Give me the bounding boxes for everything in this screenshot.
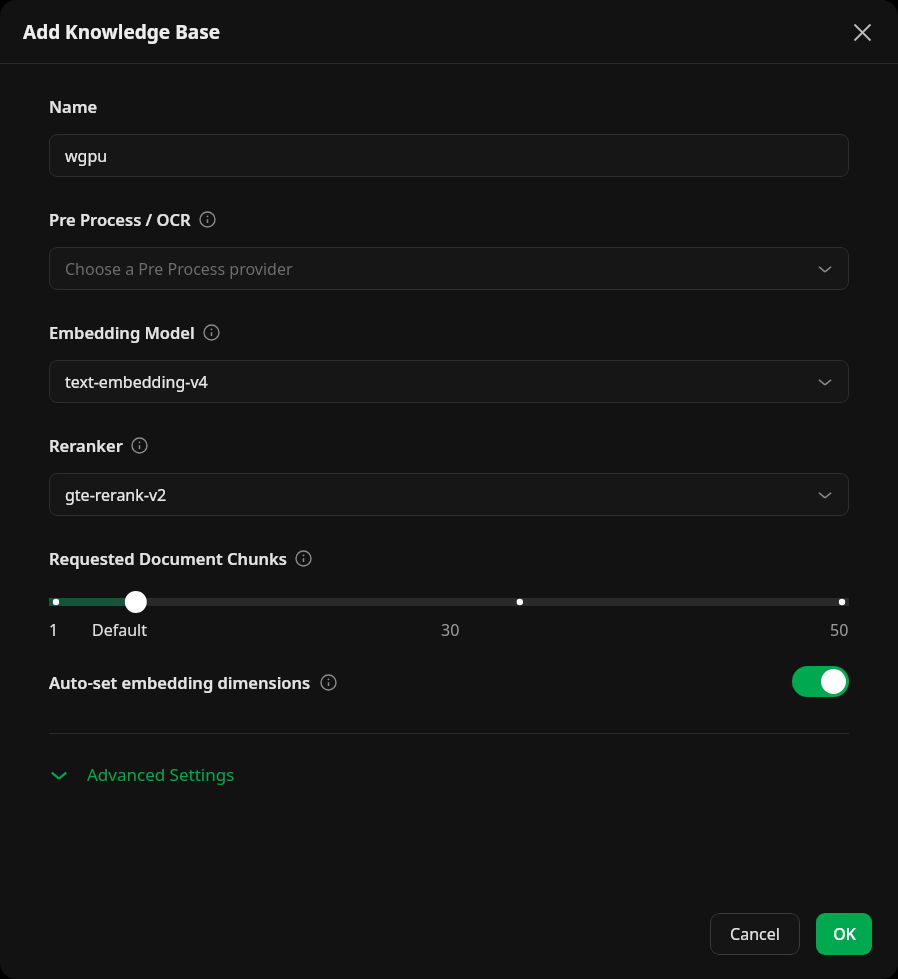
button[interactable]: text-embedding-v4 [49,360,849,403]
staticText: Default [92,619,147,641]
staticText: 1 [49,619,59,641]
staticText: Reranker [49,434,123,456]
button[interactable]: Close [848,18,876,46]
staticText: Embedding Model [49,321,195,343]
button[interactable]: wgpu [49,134,849,177]
staticText: Cancel [730,923,780,945]
staticText: Name [49,95,98,117]
button[interactable]: Auto-set embedding dimensions toggle [792,666,849,697]
staticText: Requested Document Chunks [49,547,287,569]
staticText: Pre Process / OCR [49,208,191,230]
button[interactable]: OK [816,913,872,955]
button[interactable]: Cancel [710,913,800,955]
staticText: wgpu [65,145,108,167]
staticText: Choose a Pre Process provider [65,258,293,280]
staticText: Advanced Settings [87,763,235,786]
button[interactable]: Choose a Pre Process provider [49,247,849,290]
staticText: 50 [830,619,849,641]
staticText: gte-rerank-v2 [65,484,167,506]
button[interactable]: Advanced Settings [49,759,235,790]
staticText: 30 [441,619,460,641]
button[interactable]: gte-rerank-v2 [49,473,849,516]
staticText: OK [833,923,856,945]
button[interactable]: Requested document chunks slider [49,591,849,613]
staticText: Add Knowledge Base [23,19,221,45]
staticText: Auto-set embedding dimensions [49,671,311,693]
staticText: text-embedding-v4 [65,371,208,393]
